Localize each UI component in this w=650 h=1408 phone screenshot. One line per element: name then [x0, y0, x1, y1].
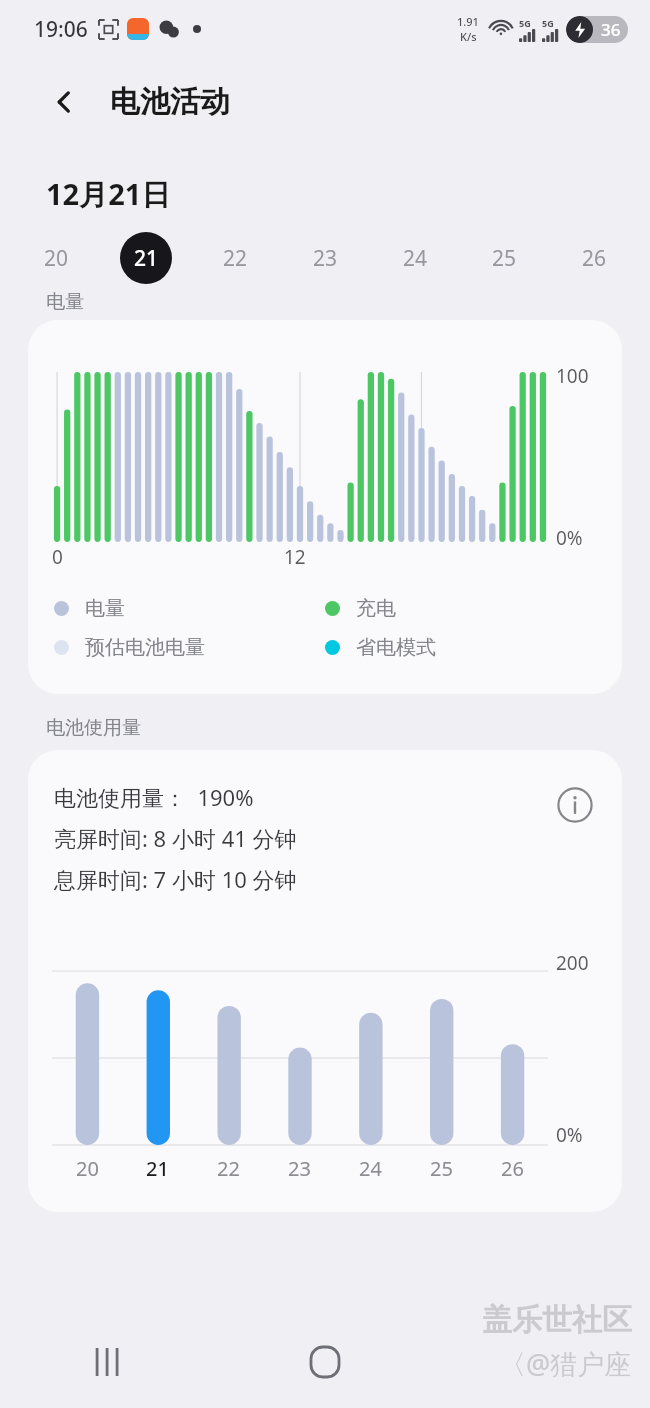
staticText: 12月21日	[46, 174, 171, 214]
staticText: 19:06	[34, 15, 88, 44]
staticText: 息屏时间: 7 小时 10 分钟	[54, 864, 297, 894]
button[interactable]: 26	[568, 232, 620, 284]
staticText: 充电	[356, 596, 396, 621]
staticText: 21	[134, 244, 159, 273]
staticText: 0	[52, 544, 63, 570]
staticText: 电量	[46, 290, 84, 314]
staticText: 12	[284, 544, 306, 570]
staticText: 26	[501, 1155, 524, 1182]
staticText: 26	[582, 244, 607, 273]
staticText: 电池使用量： 190%	[54, 782, 254, 812]
button[interactable]: Back	[40, 78, 88, 126]
staticText: 〈@猎户座	[499, 1345, 632, 1382]
button[interactable]: 21	[120, 232, 172, 284]
staticText: 25	[430, 1155, 453, 1182]
staticText: 21	[146, 1155, 169, 1182]
staticText: 22	[217, 1155, 240, 1182]
button[interactable]: 24	[389, 232, 441, 284]
staticText: K/s	[460, 29, 477, 44]
staticText: 0%	[556, 525, 583, 551]
staticText: 5G	[519, 17, 531, 29]
staticText: 200	[556, 950, 589, 976]
staticText: 电量	[85, 596, 125, 621]
button[interactable]: 电池使用量： 190%	[28, 750, 622, 1212]
staticText: 1.91	[457, 14, 479, 29]
button[interactable]: 25	[478, 232, 530, 284]
staticText: 22	[223, 244, 248, 273]
staticText: 电池活动	[110, 83, 230, 121]
staticText: 0%	[556, 1122, 583, 1148]
staticText: 100	[556, 363, 589, 389]
staticText: 25	[492, 244, 517, 273]
staticText: 24	[403, 244, 428, 273]
staticText: 20	[76, 1155, 99, 1182]
staticText: 24	[359, 1155, 382, 1182]
staticText: 36	[601, 18, 621, 41]
button[interactable]: Recents	[0, 1316, 216, 1408]
staticText: 23	[313, 244, 338, 273]
staticText: 省电模式	[356, 635, 436, 660]
staticText: 20	[44, 244, 69, 273]
staticText: 23	[288, 1155, 311, 1182]
button[interactable]: 23	[299, 232, 351, 284]
button[interactable]: 100	[28, 320, 622, 694]
button[interactable]: 20	[30, 232, 82, 284]
staticText: 亮屏时间: 8 小时 41 分钟	[54, 823, 297, 853]
button[interactable]: Home	[216, 1316, 433, 1408]
button[interactable]: Information	[552, 782, 598, 828]
staticText: 5G	[542, 17, 554, 29]
staticText: 电池使用量	[46, 716, 141, 740]
button[interactable]: 22	[209, 232, 261, 284]
staticText: 预估电池电量	[85, 635, 205, 660]
staticText: 盖乐世社区	[482, 1301, 632, 1339]
